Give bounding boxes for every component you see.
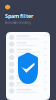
staticText: Automatic blocking [5, 21, 31, 24]
staticText: Spam filter [5, 12, 33, 19]
